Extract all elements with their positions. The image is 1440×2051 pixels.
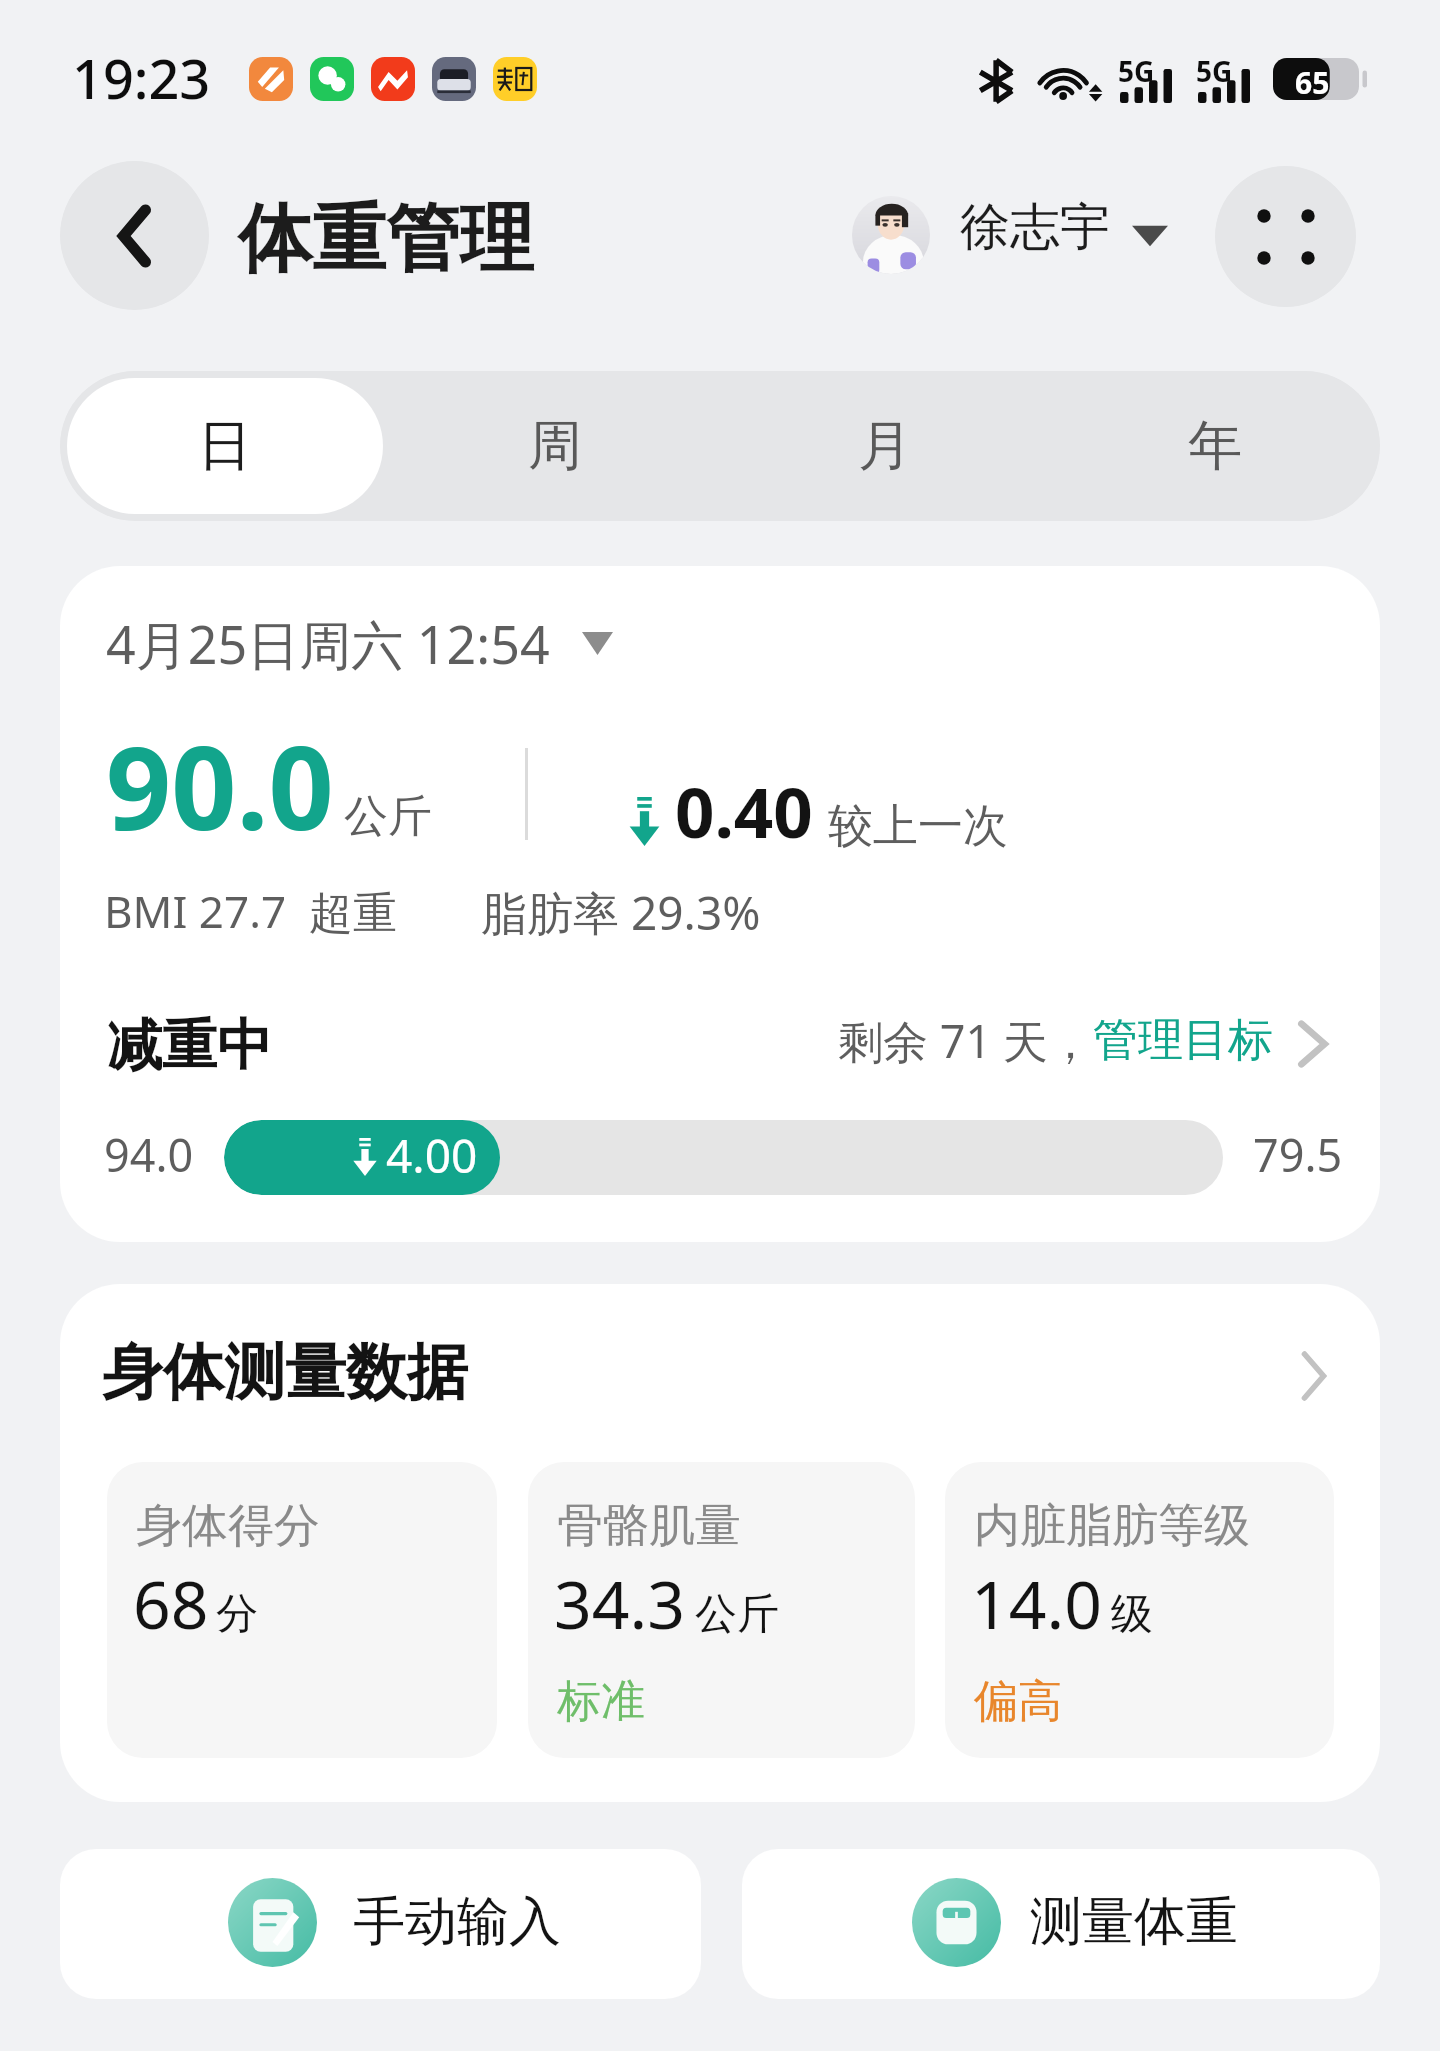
staticText: 公斤 bbox=[695, 1588, 779, 1641]
staticText: 5G bbox=[1196, 52, 1233, 90]
staticText: 徐志宇 bbox=[960, 196, 1110, 259]
button[interactable]: 测量体重 bbox=[742, 1849, 1380, 1999]
staticText: 减重中 bbox=[107, 1011, 272, 1080]
staticText: 标准 bbox=[557, 1674, 645, 1729]
button[interactable]: 年 bbox=[1057, 378, 1373, 514]
button[interactable]: 周 bbox=[397, 378, 713, 514]
button[interactable]: 日 bbox=[67, 378, 383, 514]
staticText: BMI 27.7 超重 bbox=[104, 881, 398, 941]
staticText: 周 bbox=[528, 412, 582, 480]
staticText: 身体得分 bbox=[136, 1497, 320, 1555]
staticText: 体重管理 bbox=[238, 193, 534, 286]
staticText: 级 bbox=[1111, 1588, 1153, 1641]
button[interactable]: 骨骼肌量 bbox=[528, 1462, 915, 1758]
button[interactable]: 4月25日周六 12:54 bbox=[106, 608, 613, 679]
staticText: 较上一次 bbox=[828, 798, 1008, 855]
button[interactable]: 月 bbox=[727, 378, 1043, 514]
staticText: 手动输入 bbox=[353, 1889, 561, 1955]
staticText: 内脏脂肪等级 bbox=[974, 1497, 1250, 1555]
staticText: 4.00 bbox=[386, 1124, 478, 1187]
staticText: 年 bbox=[1188, 412, 1242, 480]
staticText: 日 bbox=[198, 412, 252, 480]
staticText: 月 bbox=[858, 412, 912, 480]
staticText: 测量体重 bbox=[1030, 1889, 1238, 1955]
staticText: 14.0 bbox=[971, 1558, 1102, 1648]
button[interactable]: 身体得分 bbox=[107, 1462, 497, 1758]
staticText: 管理目标 bbox=[1093, 1012, 1273, 1069]
button[interactable]: 内脏脂肪等级 bbox=[945, 1462, 1334, 1758]
staticText: 分 bbox=[216, 1588, 258, 1641]
staticText: 5G bbox=[1118, 52, 1155, 90]
staticText: 19:23 bbox=[72, 41, 211, 115]
staticText: 身体测量数据 bbox=[102, 1334, 468, 1411]
button[interactable]: 手动输入 bbox=[60, 1849, 701, 1999]
staticText: 65 bbox=[1295, 62, 1330, 103]
staticText: 94.0 bbox=[104, 1124, 194, 1185]
button[interactable]: 剩余 71 天， bbox=[838, 1010, 1325, 1071]
staticText: 4月25日周六 12:54 bbox=[106, 608, 550, 679]
button[interactable]: Back bbox=[60, 161, 209, 310]
staticText: 剩余 71 天， bbox=[838, 1010, 1093, 1071]
staticText: 68 bbox=[133, 1558, 209, 1648]
staticText: 骨骼肌量 bbox=[557, 1497, 741, 1555]
staticText: 79.5 bbox=[1253, 1124, 1343, 1185]
staticText: 脂肪率 29.3% bbox=[481, 881, 761, 944]
button[interactable]: More options bbox=[1215, 166, 1356, 307]
staticText: 偏高 bbox=[974, 1674, 1062, 1729]
staticText: 公斤 bbox=[344, 789, 432, 844]
button[interactable]: 身体测量数据 bbox=[60, 1284, 1380, 1394]
staticText: 90.0 bbox=[106, 708, 334, 863]
staticText: 34.3 bbox=[554, 1558, 685, 1648]
staticText: 0.40 bbox=[675, 764, 813, 858]
button[interactable] bbox=[846, 190, 1174, 282]
